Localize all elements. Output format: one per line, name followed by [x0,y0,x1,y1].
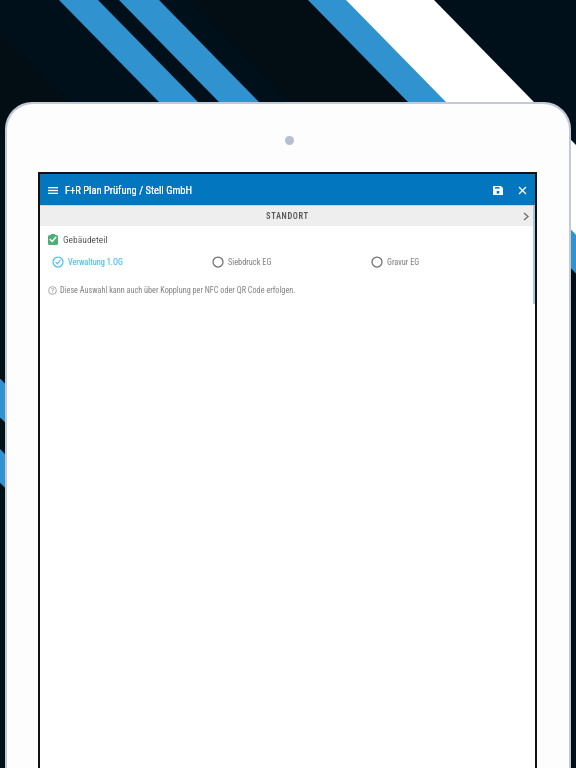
staticText: Diese Auswahl kann auch über Kopplung pe… [60,285,296,295]
staticText: Verwaltung 1.OG [68,257,123,267]
staticText: ? [51,286,55,295]
staticText: Siebdruck EG [228,257,272,267]
button[interactable]: Menu [42,179,64,201]
staticText: Gebäudeteil [63,234,108,245]
button[interactable]: Close [510,178,534,202]
button[interactable]: Verwaltung 1.OG [52,256,123,268]
staticText: STANDORT [266,211,309,221]
button[interactable]: Save [486,178,510,202]
staticText: Gravur EG [387,257,420,267]
staticText: F+R Plan Prüfung / Stell GmbH [65,184,192,196]
button[interactable]: Siebdruck EG [212,256,272,268]
button[interactable]: Gebäudeteil [48,233,535,246]
button[interactable]: Gravur EG [371,256,420,268]
button[interactable]: STANDORT [40,206,535,226]
